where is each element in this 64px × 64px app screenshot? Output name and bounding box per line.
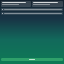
button[interactable] [1,1,31,7]
button[interactable] [1,12,63,15]
button[interactable] [32,1,63,7]
button[interactable] [1,8,63,11]
button[interactable]: Primary action [1,58,63,61]
